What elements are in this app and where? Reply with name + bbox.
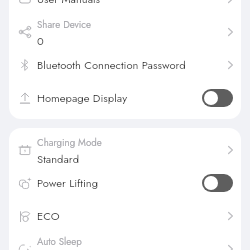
button[interactable]: Toggle [202,89,233,107]
button[interactable]: Power Lifting [9,166,241,199]
other: Open [223,143,233,157]
other: Open [223,242,233,250]
button[interactable]: Auto Sleep [9,232,241,250]
staticText: 0 [37,33,44,49]
staticText: Bluetooth Connection Password [37,57,186,73]
staticText: Standard [37,151,80,167]
other: Open [223,209,233,223]
staticText: Share Device [37,18,91,32]
staticText: Power Lifting [37,175,99,191]
staticText: Charging Mode [37,136,102,150]
staticText: Auto Sleep [37,235,82,249]
button[interactable]: Homepage Display [9,81,241,114]
button[interactable]: Toggle [202,174,233,192]
button[interactable]: ECO [9,199,241,232]
staticText: ECO [37,208,60,224]
button[interactable]: Charging Mode [9,133,241,166]
staticText: Homepage Display [37,90,128,106]
button[interactable]: Share Device [9,15,241,48]
staticText: User Manuals [37,0,101,7]
button[interactable]: Bluetooth Connection Password [9,48,241,81]
other: Open [223,0,233,6]
other: Open [223,25,233,39]
button[interactable]: User Manuals [9,0,241,15]
other: Open [223,58,233,72]
